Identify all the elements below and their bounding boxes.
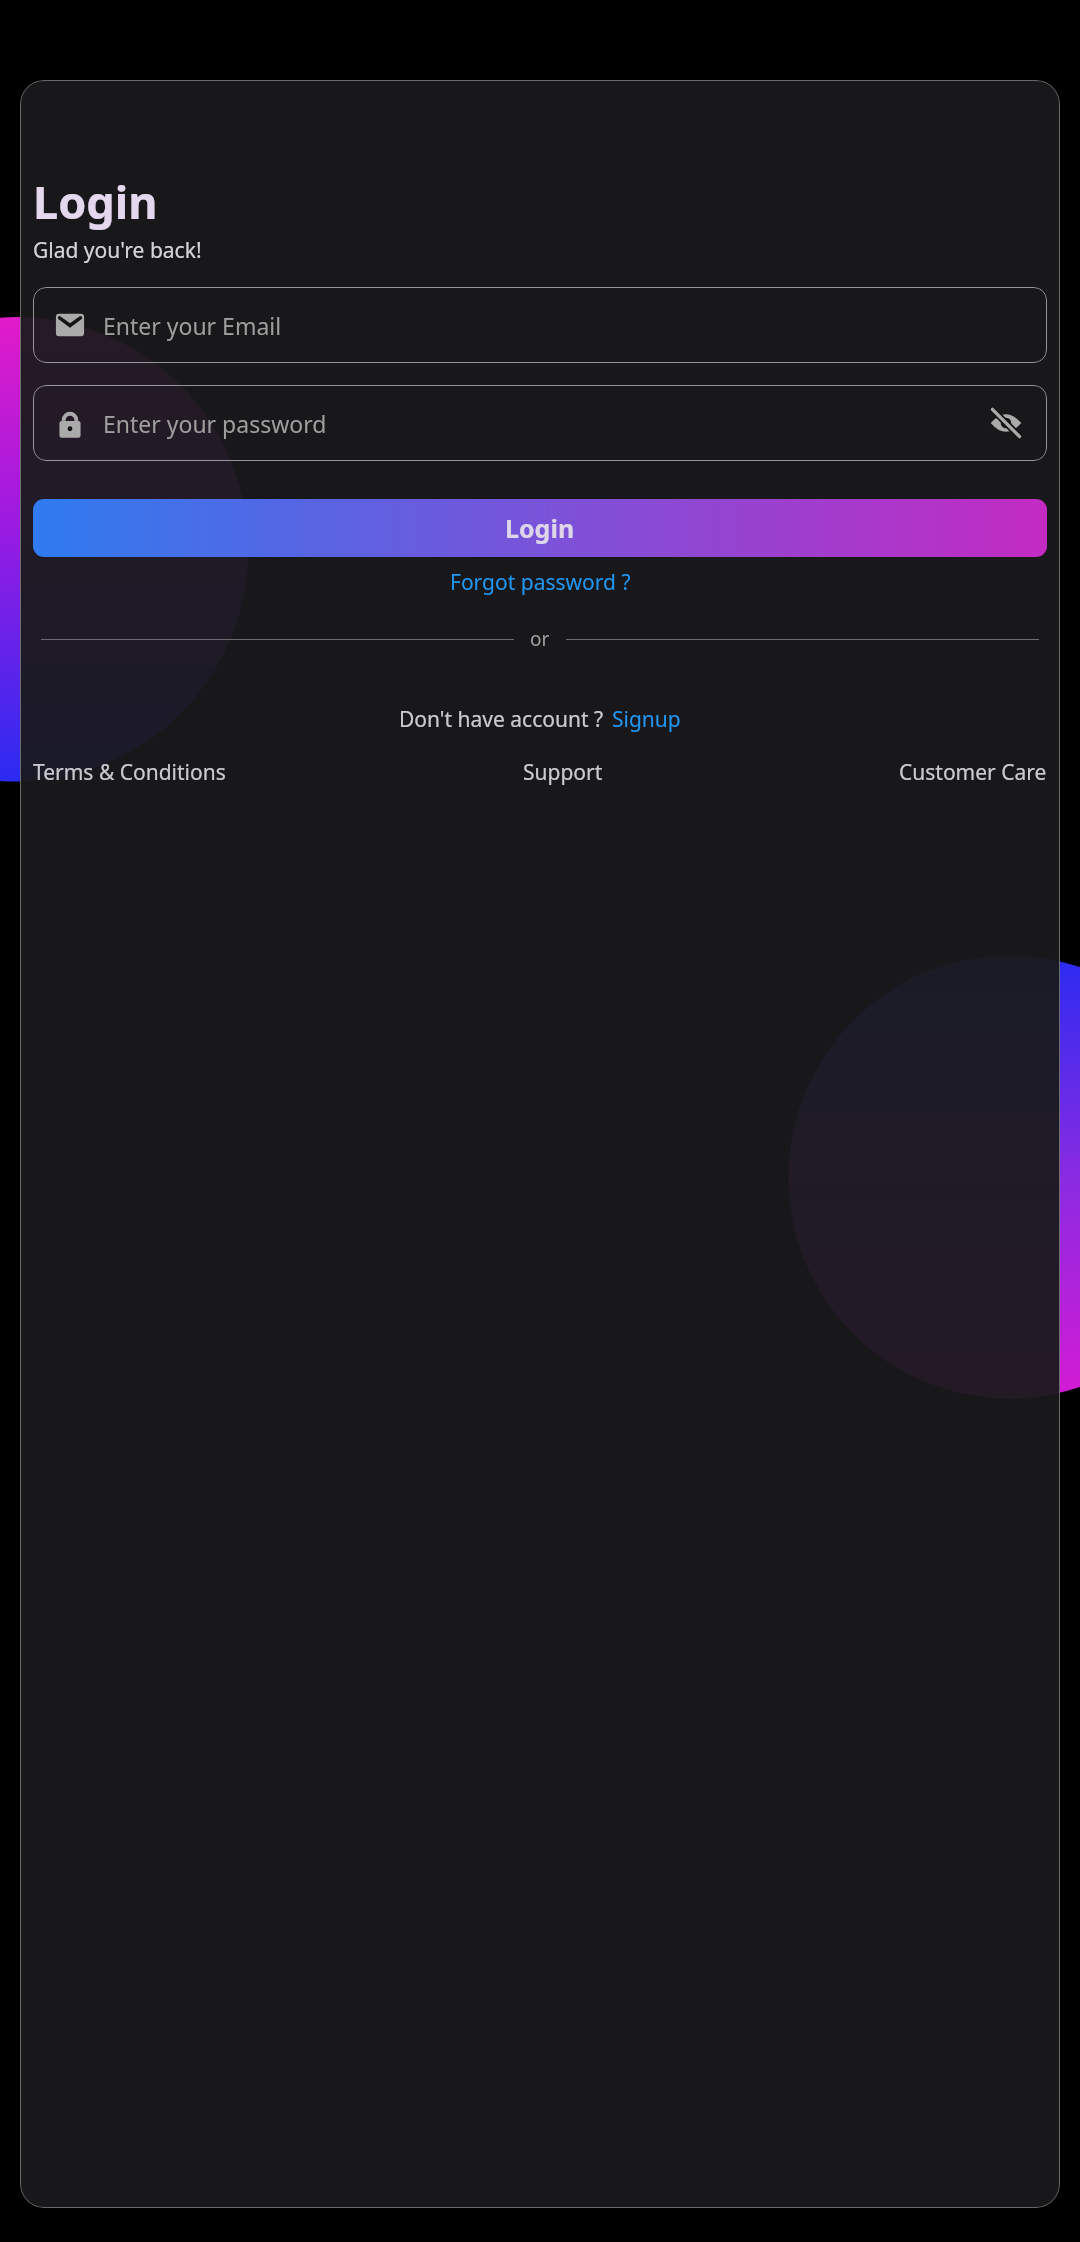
staticText: Signup bbox=[612, 705, 681, 734]
button[interactable]: Support bbox=[523, 758, 603, 787]
button[interactable]: Show password bbox=[986, 403, 1026, 443]
staticText: Login bbox=[33, 171, 158, 232]
staticText: Login bbox=[505, 511, 575, 545]
button[interactable]: Signup bbox=[612, 705, 681, 734]
button[interactable]: Enter your password bbox=[33, 385, 1047, 461]
button[interactable]: Forgot password ? bbox=[450, 568, 631, 597]
staticText: Don't have account ? bbox=[399, 705, 604, 734]
staticText: or bbox=[530, 626, 550, 652]
button[interactable]: Enter your Email bbox=[33, 287, 1047, 363]
staticText: Customer Care bbox=[899, 758, 1047, 787]
button[interactable]: Customer Care bbox=[899, 758, 1047, 787]
staticText: Enter your Email bbox=[103, 310, 282, 341]
staticText: Forgot password ? bbox=[450, 568, 631, 597]
button[interactable]: Terms & Conditions bbox=[33, 758, 226, 787]
staticText: Enter your password bbox=[103, 408, 327, 439]
button[interactable]: Login bbox=[33, 499, 1047, 557]
staticText: Glad you're back! bbox=[33, 236, 202, 265]
staticText: Terms & Conditions bbox=[33, 758, 226, 787]
staticText: Support bbox=[523, 758, 603, 787]
